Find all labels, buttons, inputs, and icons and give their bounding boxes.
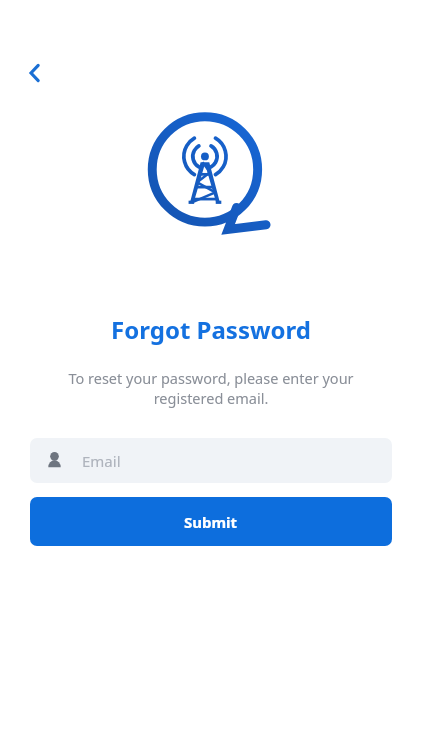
button[interactable]: Back [14,52,56,94]
button[interactable]: Email [30,438,392,483]
staticText: To reset your password, please enter you… [34,368,388,409]
staticText: Submit [184,512,238,532]
staticText: Email [82,451,121,471]
button[interactable]: Submit [30,497,392,546]
staticText: Forgot Password [111,313,311,346]
